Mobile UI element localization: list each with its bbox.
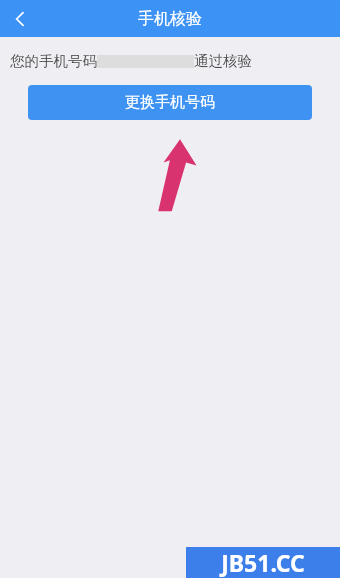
staticText: JB51.CC [221,547,305,578]
button[interactable]: 更换手机号码 [28,85,312,120]
staticText: 更换手机号码 [125,93,215,112]
button[interactable]: Back [0,0,40,37]
staticText: 您的手机号码 [10,52,97,70]
staticText: 手机核验 [138,9,202,29]
staticText: 通过核验 [194,52,252,70]
